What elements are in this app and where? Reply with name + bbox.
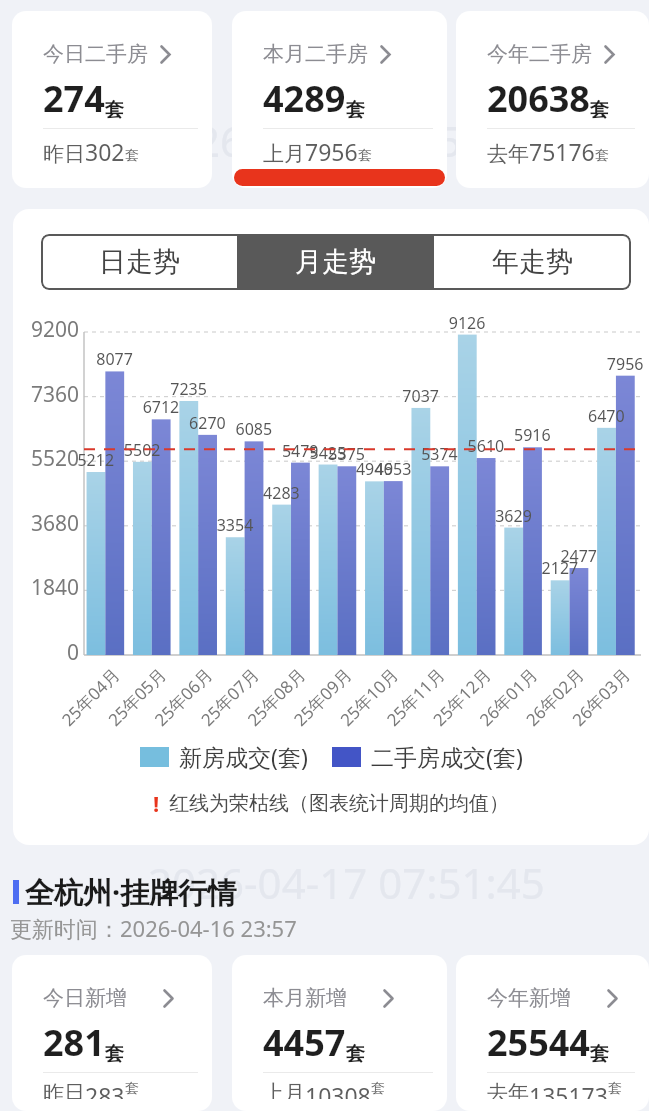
staticText: 去年	[487, 141, 529, 167]
button[interactable]: 今日二手房	[12, 11, 212, 188]
staticText: 全杭州·挂牌行情	[25, 872, 237, 912]
staticText: 昨日	[43, 1080, 85, 1099]
staticText: 75176	[529, 136, 595, 167]
staticText: 二手房成交(套)	[371, 741, 523, 772]
button[interactable]: 今日新增	[12, 955, 212, 1111]
staticText: 套	[105, 98, 124, 122]
staticText: 红线为荣枯线（图表统计周期的均值）	[169, 791, 509, 816]
staticText: 套	[105, 1042, 124, 1066]
staticText: 今日新增	[43, 985, 127, 1011]
button[interactable]: 本月二手房	[232, 11, 447, 188]
staticText: 10308	[305, 1080, 371, 1099]
staticText: 4289	[263, 74, 346, 123]
staticText: 上月	[263, 141, 305, 167]
button[interactable]: 今年新增	[456, 955, 649, 1111]
staticText: 套	[346, 98, 365, 122]
staticText: 年走势	[492, 245, 573, 279]
staticText: 套	[125, 147, 139, 165]
staticText: 281	[43, 1018, 105, 1067]
button[interactable]: 今年二手房	[456, 11, 649, 188]
button[interactable]: 日走势	[41, 234, 237, 290]
staticText: 上月	[263, 1080, 305, 1099]
staticText: 去年	[487, 1080, 529, 1099]
button[interactable]: 年走势	[434, 234, 631, 290]
staticText: 套	[595, 147, 609, 165]
staticText: 本月二手房	[263, 41, 368, 67]
staticText: 今年新增	[487, 985, 571, 1011]
staticText: 今年二手房	[487, 41, 592, 67]
staticText: 283	[85, 1080, 125, 1099]
staticText: 新房成交(套)	[179, 741, 308, 772]
staticText: 日走势	[99, 245, 180, 279]
staticText: 套	[590, 1042, 609, 1066]
button[interactable]: 月走势	[237, 234, 434, 290]
staticText: 昨日	[43, 141, 85, 167]
staticText: 25544	[487, 1018, 590, 1067]
staticText: 套	[358, 147, 372, 165]
staticText: 302	[85, 136, 125, 167]
staticText: 更新时间：2026-04-16 23:57	[10, 913, 297, 943]
staticText: 今日二手房	[43, 41, 148, 67]
staticText: 本月新增	[263, 985, 347, 1011]
staticText: 套	[346, 1042, 365, 1066]
staticText: 274	[43, 74, 105, 123]
staticText: 135173	[529, 1080, 608, 1099]
staticText: 20638	[487, 74, 590, 123]
staticText: 套	[371, 1080, 385, 1097]
staticText: 套	[590, 98, 609, 122]
staticText: 7956	[305, 136, 358, 167]
button[interactable]: 本月新增	[232, 955, 447, 1111]
staticText: !	[153, 788, 160, 818]
staticText: 月走势	[295, 245, 376, 279]
staticText: 4457	[263, 1018, 346, 1067]
staticText: 套	[125, 1080, 139, 1097]
staticText: 套	[608, 1080, 622, 1097]
